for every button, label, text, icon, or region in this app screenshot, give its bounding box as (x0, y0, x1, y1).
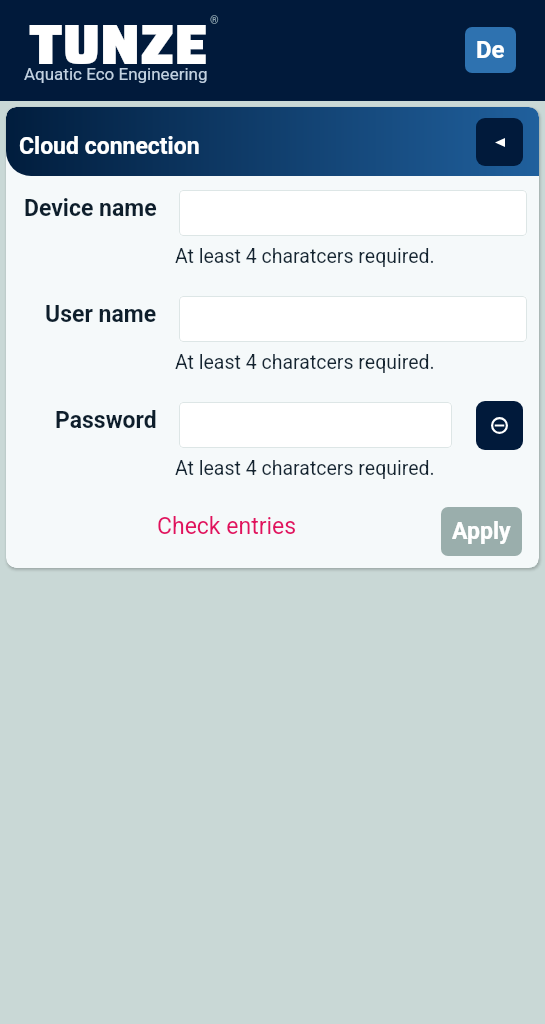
button[interactable] (179, 190, 527, 236)
staticText: User name (45, 301, 157, 328)
staticText: De (476, 36, 505, 64)
button[interactable]: Device name (6, 185, 157, 231)
button[interactable] (179, 296, 527, 342)
staticText: Cloud connection (19, 133, 200, 160)
button[interactable] (179, 402, 452, 448)
button[interactable]: Password (6, 397, 157, 443)
staticText: At least 4 charatcers required. (175, 351, 435, 374)
staticText: ® (210, 14, 219, 27)
staticText: TUNZE (29, 0, 209, 88)
staticText: Password (55, 407, 157, 434)
staticText: At least 4 charatcers required. (175, 245, 435, 268)
button[interactable]: User name (6, 291, 157, 337)
button[interactable]: Show password (476, 401, 523, 450)
button[interactable]: Apply (441, 507, 522, 556)
staticText: Apply (452, 518, 511, 545)
button[interactable]: De (465, 27, 516, 73)
button[interactable]: Back (476, 118, 523, 166)
staticText: Aquatic Eco Engineering (24, 64, 208, 84)
button[interactable]: Check entries (157, 513, 297, 540)
staticText: Device name (24, 195, 157, 222)
staticText: At least 4 charatcers required. (175, 457, 435, 480)
